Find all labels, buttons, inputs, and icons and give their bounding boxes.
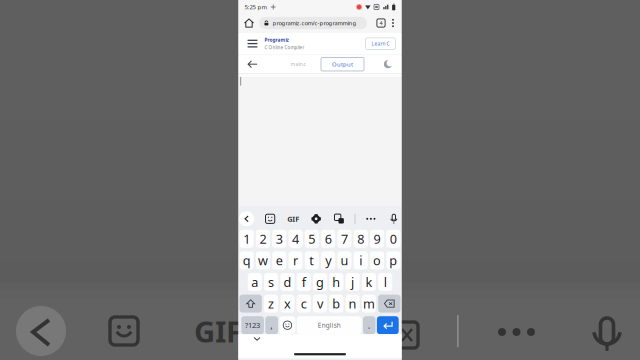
staticText: Learn C bbox=[371, 40, 389, 47]
staticText: f bbox=[302, 273, 306, 291]
button[interactable]: k bbox=[362, 273, 376, 291]
staticText: 7 bbox=[341, 230, 348, 247]
button[interactable]: Output bbox=[321, 57, 364, 71]
button[interactable]: n bbox=[346, 295, 360, 313]
button[interactable]: i bbox=[354, 251, 368, 269]
button[interactable]: o bbox=[370, 251, 384, 269]
button[interactable]: Shift bbox=[239, 295, 262, 313]
button[interactable]: 7 bbox=[337, 230, 351, 248]
staticText: y bbox=[325, 252, 331, 269]
staticText: z bbox=[268, 295, 274, 312]
staticText: . bbox=[368, 319, 371, 331]
staticText: x bbox=[284, 295, 291, 312]
staticText: e bbox=[276, 252, 283, 269]
button[interactable]: Back bbox=[239, 211, 255, 227]
button[interactable]: 6 bbox=[321, 230, 335, 248]
button[interactable]: Translate bbox=[332, 211, 347, 226]
button[interactable]: a bbox=[248, 273, 262, 291]
button[interactable]: 3 bbox=[272, 230, 286, 248]
button[interactable]: Emoji bbox=[279, 316, 295, 334]
staticText: o bbox=[373, 252, 381, 269]
staticText: k bbox=[365, 273, 372, 291]
button[interactable]: 5 bbox=[305, 230, 319, 248]
staticText: 9 bbox=[374, 230, 381, 247]
button[interactable]: , bbox=[265, 316, 278, 334]
button[interactable]: Home bbox=[242, 14, 256, 32]
button[interactable]: q bbox=[240, 251, 254, 269]
button[interactable]: x bbox=[280, 295, 294, 313]
button[interactable]: 2 bbox=[256, 230, 270, 248]
button[interactable]: English bbox=[297, 316, 362, 334]
button[interactable]: w bbox=[256, 251, 270, 269]
staticText: w bbox=[258, 252, 268, 269]
button[interactable]: 0 bbox=[386, 230, 400, 248]
staticText: s bbox=[268, 273, 274, 291]
staticText: a bbox=[251, 273, 258, 291]
button[interactable]: h bbox=[329, 273, 343, 291]
button[interactable]: Backspace bbox=[378, 295, 400, 313]
button[interactable]: Back bbox=[244, 55, 260, 73]
button[interactable]: y bbox=[321, 251, 335, 269]
button[interactable]: t bbox=[305, 251, 319, 269]
staticText: i bbox=[359, 252, 362, 269]
staticText: m bbox=[363, 295, 375, 312]
staticText: b bbox=[332, 295, 340, 312]
button[interactable]: b bbox=[329, 295, 343, 313]
button[interactable]: 1 bbox=[240, 230, 254, 248]
button[interactable]: Hide keyboard bbox=[250, 332, 263, 345]
button[interactable]: r bbox=[288, 251, 303, 269]
button[interactable]: GIF bbox=[286, 211, 301, 226]
staticText: 1 bbox=[243, 230, 250, 247]
staticText: 8 bbox=[357, 230, 364, 247]
staticText: t bbox=[309, 252, 314, 269]
staticText: 5 bbox=[308, 230, 315, 247]
staticText: Programiz bbox=[264, 37, 288, 43]
staticText: c bbox=[301, 295, 307, 312]
staticText: GIF bbox=[194, 311, 242, 351]
button[interactable]: d bbox=[280, 273, 294, 291]
staticText: English bbox=[318, 321, 341, 329]
staticText: programiz.com/c-programming bbox=[272, 19, 356, 27]
button[interactable]: Enter bbox=[377, 316, 399, 334]
button[interactable]: Voice input bbox=[386, 211, 401, 226]
button[interactable]: ?123 bbox=[241, 316, 264, 334]
button[interactable]: u bbox=[337, 251, 351, 269]
button[interactable]: c bbox=[297, 295, 311, 313]
staticText: u bbox=[340, 252, 348, 269]
button[interactable]: j bbox=[346, 273, 360, 291]
staticText: ?123 bbox=[245, 320, 260, 330]
button[interactable]: 9 bbox=[370, 230, 384, 248]
button[interactable]: Menu bbox=[244, 33, 260, 55]
button[interactable]: g bbox=[313, 273, 327, 291]
button[interactable]: p bbox=[386, 251, 400, 269]
button[interactable]: l bbox=[378, 273, 392, 291]
staticText: 0 bbox=[390, 230, 397, 247]
staticText: q bbox=[243, 252, 251, 269]
staticText: C Online Compiler bbox=[264, 44, 304, 51]
staticText: 3 bbox=[276, 230, 283, 247]
staticText: g bbox=[316, 273, 324, 291]
button[interactable]: Open tabs bbox=[375, 14, 387, 32]
button[interactable]: v bbox=[313, 295, 327, 313]
button[interactable]: z bbox=[264, 295, 278, 313]
button[interactable]: More bbox=[363, 211, 378, 226]
button[interactable]: Settings bbox=[309, 211, 324, 226]
button[interactable]: main.c bbox=[277, 58, 319, 71]
button[interactable]: Stickers bbox=[263, 211, 278, 226]
button[interactable]: More options bbox=[388, 14, 398, 32]
button[interactable]: 8 bbox=[354, 230, 368, 248]
staticText: 4 bbox=[379, 19, 382, 27]
staticText: GIF bbox=[287, 214, 299, 224]
button[interactable]: Toggle dark mode bbox=[380, 57, 395, 72]
staticText: Output bbox=[332, 60, 353, 68]
button[interactable]: m bbox=[362, 295, 376, 313]
button[interactable]: 4 bbox=[288, 230, 303, 248]
staticText: 6 bbox=[325, 230, 332, 247]
staticText: r bbox=[293, 252, 298, 269]
button[interactable]: f bbox=[297, 273, 311, 291]
button[interactable]: e bbox=[272, 251, 286, 269]
staticText: n bbox=[349, 295, 357, 312]
button[interactable]: . bbox=[363, 316, 375, 334]
button[interactable]: Learn C bbox=[365, 38, 395, 49]
button[interactable]: s bbox=[264, 273, 278, 291]
